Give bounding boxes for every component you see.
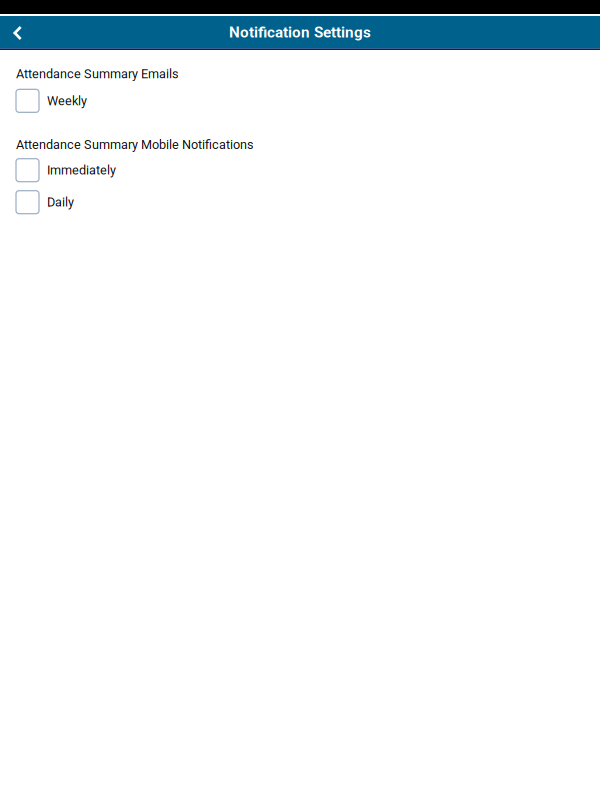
staticText: Immediately — [47, 163, 116, 178]
button[interactable]: Weekly — [16, 89, 584, 112]
staticText: Attendance Summary Emails — [16, 66, 179, 81]
button[interactable]: Immediately — [16, 159, 584, 182]
staticText: Daily — [47, 195, 74, 210]
staticText: Notification Settings — [229, 23, 371, 41]
staticText: Weekly — [47, 93, 87, 108]
staticText: Attendance Summary Mobile Notifications — [16, 137, 254, 152]
button[interactable]: Back — [0, 16, 35, 48]
button[interactable]: Daily — [16, 191, 584, 214]
